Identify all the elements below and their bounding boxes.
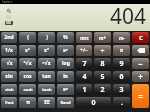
button[interactable]: +/− [76,45,92,56]
staticText: 404 [110,2,147,29]
staticText: 8 [100,59,105,69]
staticText: tan [42,73,51,80]
staticText: ÷ [100,46,105,56]
button[interactable]: ) [38,32,55,43]
staticText: xʸ [63,47,68,54]
staticText: 1 [82,85,87,95]
button[interactable]: C [132,32,149,43]
button[interactable]: m+ [94,32,111,43]
button[interactable]: − [132,58,149,69]
staticText: 5 [100,72,105,82]
staticText: Fact [5,100,14,105]
button[interactable]: 0 [76,97,111,108]
staticText: m+ [99,35,106,41]
button[interactable]: 2nd [1,32,17,43]
staticText: − [138,58,143,69]
staticText: 3 [119,85,124,95]
staticText: sin [5,73,13,80]
button[interactable]: 4 [76,71,92,82]
button[interactable]: EE [38,97,55,108]
staticText: π [26,99,30,106]
button[interactable]: Fact [1,97,17,108]
button[interactable]: + [132,71,149,82]
staticText: 9 [119,59,124,69]
button[interactable]: tan [38,71,55,82]
staticText: tanh [42,87,52,92]
staticText: EE [44,99,50,106]
button[interactable]: x³ [38,45,55,56]
button[interactable]: ʸ√x [38,58,55,69]
staticText: mrc [80,35,89,41]
button[interactable]: π [19,97,36,108]
staticText: eˣ [63,86,68,93]
staticText: cosh [23,87,33,92]
staticText: % [63,34,68,41]
staticText: ³√x [23,60,32,67]
button[interactable]: Rand [57,97,74,108]
button[interactable]: m- [113,32,130,43]
button[interactable]: 1 [76,84,92,95]
staticText: x² [25,47,30,54]
button[interactable]: eˣ [57,84,74,95]
button[interactable]: 7 [76,58,92,69]
button[interactable]: cosh [19,84,36,95]
button[interactable]: ( [19,32,36,43]
button[interactable]: cos [19,71,36,82]
staticText: DEG [6,21,12,25]
staticText: 6 [119,72,124,82]
button[interactable]: √x [1,58,17,69]
staticText: 4 [82,72,87,82]
staticText: ʸ√x [42,60,51,67]
staticText: cos [23,73,32,80]
staticText: ) [46,34,48,41]
staticText: x³ [44,47,49,54]
button[interactable]: ÷ [94,45,111,56]
staticText: 2 [100,85,105,95]
staticText: m- [119,35,125,41]
button[interactable]: tanh [38,84,55,95]
button[interactable]: 3 [113,84,130,95]
button[interactable]: 8 [94,58,111,69]
button[interactable]: 2 [94,84,111,95]
staticText: +/− [80,47,88,54]
button[interactable]: ³√x [19,58,36,69]
button[interactable]: = [132,84,149,108]
staticText: Carrier ▾ [2,0,13,4]
staticText: 7 [82,59,87,69]
staticText: ln [63,73,68,80]
staticText: C [139,34,143,42]
button[interactable]: 6 [113,71,130,82]
staticText: ( [27,34,29,41]
button[interactable]: sinh [1,84,17,95]
button[interactable]: Backspace [132,45,149,56]
staticText: log [62,60,70,67]
button[interactable]: xʸ [57,45,74,56]
staticText: 0 [91,98,96,108]
staticText: sinh [5,87,14,92]
staticText: √x [6,60,13,67]
button[interactable]: 1/x [1,45,17,56]
staticText: × [119,46,124,56]
button[interactable]: . [113,97,130,108]
button[interactable]: mrc [76,32,92,43]
staticText: Rand [60,100,71,105]
staticText: M [6,13,12,21]
staticText: = [138,91,143,102]
staticText: 2nd [4,34,14,41]
button[interactable]: 5 [94,71,111,82]
staticText: . [121,98,123,108]
staticText: + [138,71,143,82]
button[interactable]: 9 [113,58,130,69]
staticText: 1/x [5,47,13,54]
button[interactable]: × [113,45,130,56]
button[interactable]: log [57,58,74,69]
button[interactable]: sin [1,71,17,82]
button[interactable]: x² [19,45,36,56]
button[interactable]: ln [57,71,74,82]
button[interactable]: % [57,32,74,43]
